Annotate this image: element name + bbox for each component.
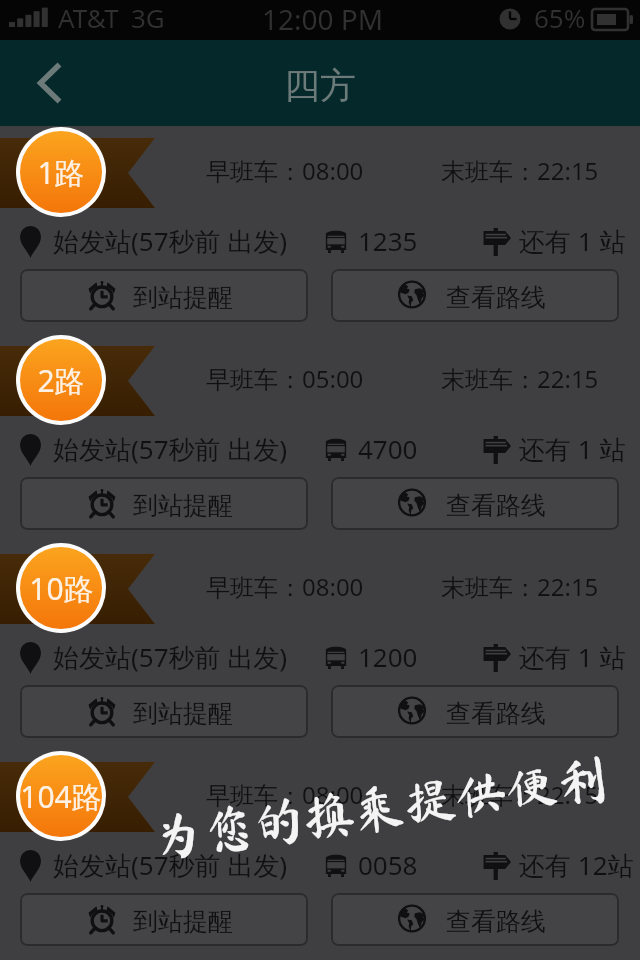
staticText: 末班车：22:15: [441, 362, 599, 395]
staticText: 到站提醒: [133, 698, 233, 729]
staticText: 查看路线: [446, 698, 546, 729]
staticText: 12:00 PM: [262, 0, 384, 38]
staticText: 还有 1 站: [519, 223, 626, 259]
button[interactable]: View route: [331, 893, 619, 946]
staticText: 末班车：22:15: [441, 570, 599, 603]
staticText: 3G: [131, 0, 165, 35]
staticText: 到站提醒: [133, 282, 233, 313]
staticText: 2路: [37, 360, 85, 401]
staticText: 始发站(57秒前 出发): [53, 223, 288, 259]
staticText: 早班车：08:00: [206, 154, 364, 187]
staticText: 到站提醒: [133, 906, 233, 937]
button[interactable]: 104路: [20, 755, 102, 837]
button[interactable]: View route: [331, 269, 619, 322]
staticText: 早班车：08:00: [206, 570, 364, 603]
staticText: 还有 12站: [519, 847, 634, 883]
button[interactable]: View route: [331, 477, 619, 530]
staticText: 始发站(57秒前 出发): [53, 847, 288, 883]
button[interactable]: Arrival alert: [20, 893, 308, 946]
staticText: 还有 1 站: [519, 639, 626, 675]
button[interactable]: Arrival alert: [20, 269, 308, 322]
button[interactable]: Arrival alert: [20, 685, 308, 738]
button[interactable]: 10路: [20, 547, 102, 629]
staticText: 到站提醒: [133, 490, 233, 521]
staticText: 1200: [358, 639, 418, 674]
button[interactable]: 1路: [20, 131, 102, 213]
staticText: AT&T: [58, 0, 119, 35]
staticText: 四方: [284, 63, 356, 108]
staticText: 末班车：22:15: [441, 154, 599, 187]
staticText: 早班车：08:00: [206, 778, 364, 811]
button[interactable]: View route: [331, 685, 619, 738]
staticText: 始发站(57秒前 出发): [53, 431, 288, 467]
staticText: 1235: [358, 223, 418, 258]
staticText: 1路: [37, 152, 85, 193]
staticText: 10路: [29, 568, 94, 609]
button[interactable]: Arrival alert: [20, 477, 308, 530]
staticText: 查看路线: [446, 490, 546, 521]
staticText: 查看路线: [446, 282, 546, 313]
staticText: 早班车：05:00: [206, 362, 364, 395]
staticText: 为您的换乘提供便利: [149, 752, 611, 863]
button[interactable]: Back: [14, 40, 86, 126]
staticText: 还有 1 站: [519, 431, 626, 467]
staticText: 0058: [358, 847, 418, 882]
staticText: 104路: [20, 776, 102, 817]
staticText: 查看路线: [446, 906, 546, 937]
staticText: 65%: [534, 0, 586, 35]
staticText: 4700: [358, 431, 418, 466]
button[interactable]: 2路: [20, 339, 102, 421]
staticText: 末班车：22:15: [441, 778, 599, 811]
staticText: 始发站(57秒前 出发): [53, 639, 288, 675]
